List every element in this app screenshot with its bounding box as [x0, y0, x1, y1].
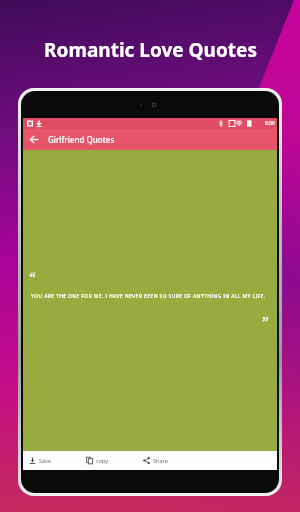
staticText: Save	[39, 457, 52, 464]
button[interactable]: Share	[137, 454, 174, 467]
staticText: Girlfriend Quotes	[48, 134, 115, 145]
staticText: ”	[262, 312, 269, 331]
button[interactable]: copy	[80, 454, 115, 467]
staticText: Share	[153, 457, 168, 464]
staticText: Romantic Love Quotes	[44, 37, 257, 63]
staticText: “	[29, 268, 36, 287]
staticText: YOU ARE THE ONE FOR ME. I HAVE NEVER BEE…	[31, 293, 266, 300]
button[interactable]: Save	[23, 454, 58, 467]
staticText: 8:06	[265, 120, 275, 127]
button[interactable]: Back	[23, 129, 44, 150]
staticText: copy	[96, 457, 109, 464]
